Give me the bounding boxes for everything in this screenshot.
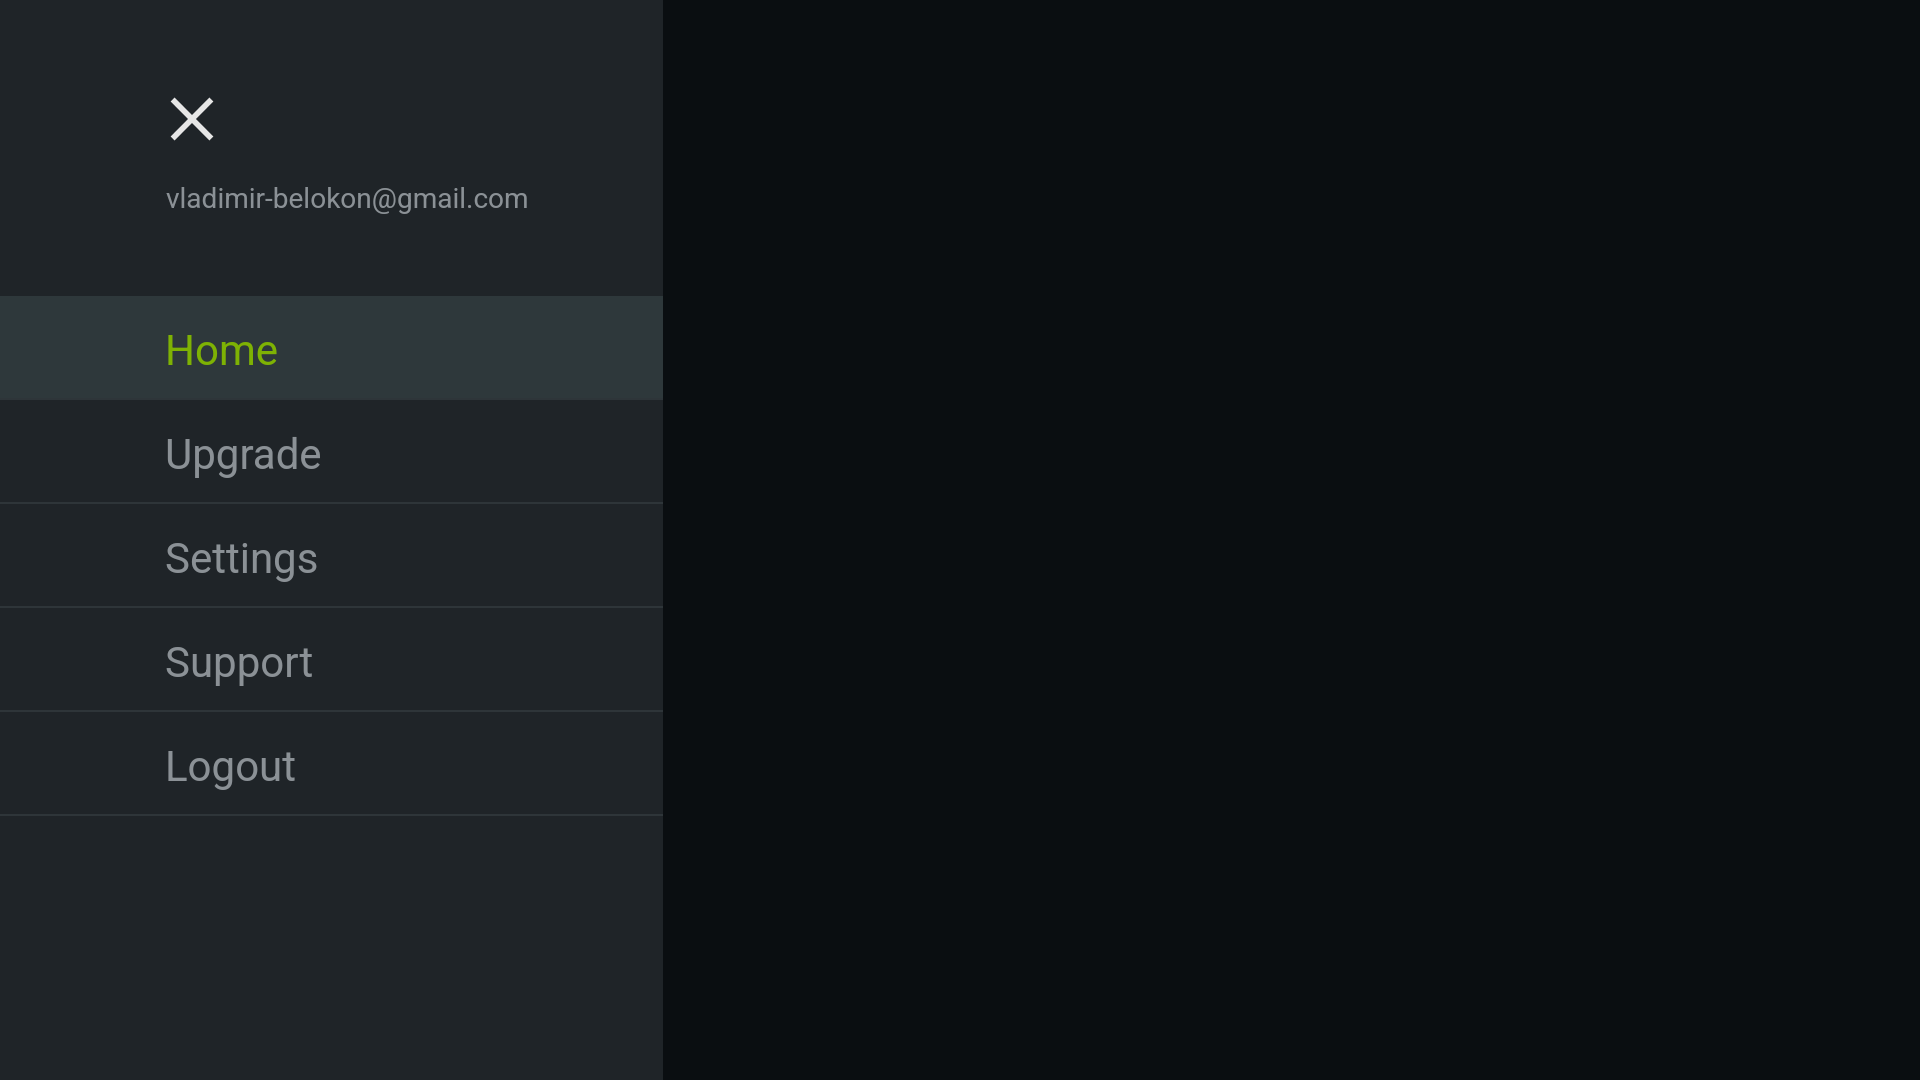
staticText: Settings xyxy=(165,534,319,583)
button[interactable]: Support xyxy=(0,608,663,712)
staticText: vladimir-belokon@gmail.com xyxy=(166,182,529,215)
button[interactable]: Logout xyxy=(0,712,663,816)
staticText: Support xyxy=(165,638,314,687)
button[interactable]: Close navigation drawer xyxy=(144,70,240,166)
staticText: Logout xyxy=(165,742,297,791)
staticText: Home xyxy=(165,326,279,375)
button[interactable]: Home xyxy=(0,296,663,400)
staticText: Upgrade xyxy=(165,430,322,479)
button[interactable]: Upgrade xyxy=(0,400,663,504)
button[interactable]: Settings xyxy=(0,504,663,608)
